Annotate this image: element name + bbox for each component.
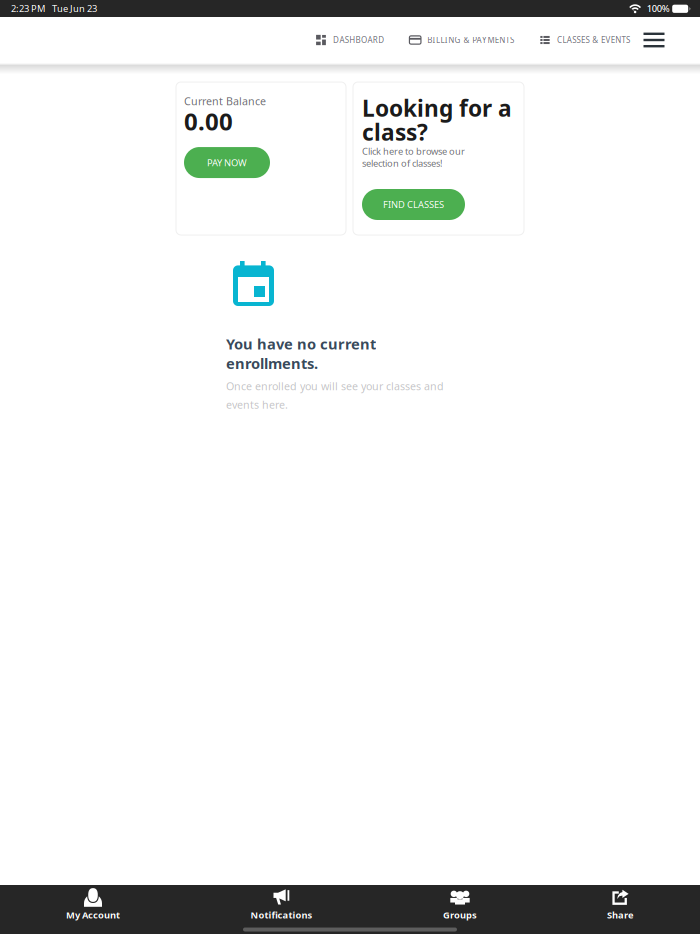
- staticText: 0.00: [184, 105, 233, 137]
- staticText: FIND CLASSES: [383, 198, 444, 211]
- button[interactable]: PAY NOW: [184, 147, 270, 178]
- staticText: Notifications: [250, 909, 312, 921]
- staticText: Current Balance: [184, 94, 266, 108]
- staticText: 100%: [647, 2, 670, 15]
- button[interactable]: DASHBOARD: [315, 18, 384, 62]
- staticText: Looking for a: [362, 93, 512, 123]
- staticText: events here.: [226, 397, 288, 412]
- button[interactable]: BILLING & PAYMENTS: [409, 18, 514, 62]
- button[interactable]: Menu: [633, 18, 675, 62]
- button[interactable]: Share: [543, 885, 698, 925]
- staticText: BILLING & PAYMENTS: [427, 35, 514, 45]
- staticText: You have no current enrollments.: [226, 334, 376, 373]
- staticText: selection of classes!: [362, 157, 443, 169]
- button[interactable]: FIND CLASSES: [362, 189, 465, 220]
- staticText: Click here to browse our: [362, 145, 465, 157]
- staticText: Share: [607, 909, 634, 921]
- staticText: 2:23 PM: [11, 2, 45, 15]
- button[interactable]: My Account: [0, 885, 186, 925]
- staticText: Once enrolled you will see your classes …: [226, 379, 444, 393]
- staticText: CLASSES & EVENTS: [557, 35, 630, 45]
- staticText: Groups: [443, 909, 477, 921]
- staticText: PAY NOW: [207, 156, 247, 169]
- staticText: My Account: [66, 909, 120, 921]
- staticText: class?: [362, 117, 428, 147]
- staticText: Tue Jun 23: [52, 2, 97, 15]
- button[interactable]: Notifications: [186, 885, 377, 925]
- button[interactable]: CLASSES & EVENTS: [539, 18, 630, 62]
- button[interactable]: Groups: [377, 885, 543, 925]
- staticText: DASHBOARD: [333, 35, 384, 45]
